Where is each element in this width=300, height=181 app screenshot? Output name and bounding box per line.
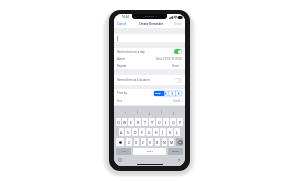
staticText: M <box>170 140 174 145</box>
button[interactable]: D <box>132 128 138 136</box>
button[interactable]: B <box>155 138 160 146</box>
button[interactable]: X <box>134 138 139 146</box>
button[interactable]: T <box>142 118 148 126</box>
button[interactable]: Backspace <box>176 138 183 146</box>
button[interactable]: U <box>156 118 162 126</box>
staticText: T <box>144 120 146 125</box>
button[interactable]: P <box>177 118 183 126</box>
staticText: Q <box>117 120 120 125</box>
button[interactable]: K <box>167 128 173 136</box>
button[interactable]: M <box>169 138 174 146</box>
button[interactable]: Dictate <box>177 158 181 162</box>
button[interactable]: Shift <box>116 138 124 146</box>
staticText: S <box>127 130 129 135</box>
staticText: X <box>135 140 138 145</box>
button[interactable]: 123 <box>116 148 131 155</box>
staticText: Repeat <box>117 64 127 68</box>
button[interactable]: N <box>162 138 167 146</box>
button[interactable]: O <box>170 118 176 126</box>
staticText: Remind me on a day <box>117 50 145 54</box>
staticText: None <box>155 92 161 95</box>
button[interactable]: F <box>139 128 145 136</box>
button[interactable]: Remind me at a location <box>114 75 185 85</box>
button[interactable]: Alarm <box>114 55 185 62</box>
staticText: L <box>176 130 178 135</box>
staticText: 123 <box>122 150 126 153</box>
staticText: Z <box>128 140 131 145</box>
button[interactable]: C <box>141 138 146 146</box>
button[interactable]: Q <box>116 118 121 126</box>
staticText: P <box>179 120 182 125</box>
staticText: D <box>134 130 137 135</box>
staticText: Y <box>151 120 154 125</box>
button[interactable]: W <box>122 118 127 126</box>
button[interactable]: E <box>128 118 134 126</box>
staticText: Priority <box>117 91 127 95</box>
button[interactable]: i <box>138 106 161 118</box>
button[interactable]: S <box>125 128 131 136</box>
staticText: A <box>120 130 123 135</box>
staticText: I <box>165 120 167 125</box>
button[interactable]: Z <box>126 138 132 146</box>
button[interactable]: Cancel <box>114 20 129 28</box>
staticText: Remind me at a location <box>117 78 150 82</box>
staticText: Coral <box>173 99 180 103</box>
button[interactable]: J <box>160 128 166 136</box>
button[interactable]: L <box>174 128 180 136</box>
button[interactable]: ì <box>162 106 185 118</box>
staticText: Never <box>172 64 180 68</box>
staticText: J <box>162 130 164 135</box>
staticText: Create Reminder <box>139 22 164 26</box>
staticText: Wed, 27/02/19 20:00 <box>156 57 182 61</box>
staticText: Done <box>174 22 182 26</box>
button[interactable]: A <box>119 128 124 136</box>
button[interactable]: H <box>153 128 159 136</box>
staticText: return <box>172 150 179 153</box>
staticText: V <box>149 140 152 145</box>
staticText: E <box>130 120 132 125</box>
staticText: W <box>123 120 127 125</box>
button[interactable]: Done <box>172 20 185 28</box>
staticText: N <box>163 140 166 145</box>
staticText: H <box>155 130 158 135</box>
staticText: i <box>149 111 150 116</box>
staticText: ì <box>173 111 174 116</box>
button[interactable]: R <box>135 118 141 126</box>
staticText: K <box>169 130 172 135</box>
staticText: C <box>142 140 145 145</box>
staticText: R <box>137 120 140 125</box>
button[interactable]: None <box>154 91 182 96</box>
button[interactable]: List <box>114 97 185 105</box>
staticText: B <box>156 140 159 145</box>
staticText: ‘ <box>125 111 126 116</box>
button[interactable]: space <box>133 148 166 155</box>
button[interactable]: Repeat <box>114 62 185 69</box>
button[interactable]: V <box>148 138 153 146</box>
staticText: U <box>158 120 161 125</box>
button[interactable]: Y <box>149 118 155 126</box>
button[interactable]: return <box>168 148 183 155</box>
staticText: space <box>147 150 153 153</box>
staticText: List <box>117 99 122 103</box>
button[interactable]: I <box>163 118 169 126</box>
staticText: 16:34 <box>122 15 129 19</box>
button[interactable]: G <box>146 128 152 136</box>
button[interactable]: Emoji keyboard <box>118 158 122 162</box>
button[interactable]: Remind me on a day <box>114 48 185 55</box>
staticText: O <box>172 120 175 125</box>
staticText: Cancel <box>117 22 127 26</box>
staticText: F <box>141 130 143 135</box>
staticText: G <box>148 130 151 135</box>
staticText: Alarm <box>117 57 126 61</box>
